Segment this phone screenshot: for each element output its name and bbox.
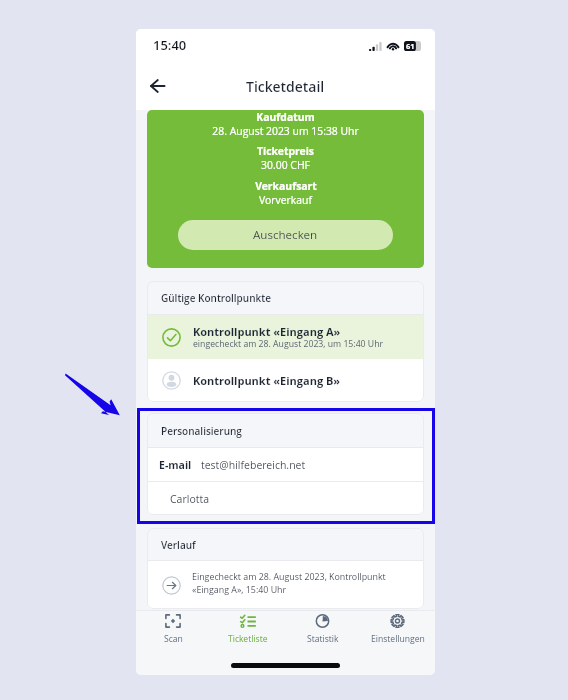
button[interactable]: Einstellungen bbox=[360, 611, 435, 645]
staticText: Auschecken bbox=[253, 227, 318, 243]
staticText: test@hilfebereich.net bbox=[201, 458, 306, 472]
staticText: Ticketliste bbox=[228, 633, 268, 645]
staticText: Scan bbox=[164, 633, 183, 645]
staticText: Verkaufsart bbox=[255, 179, 317, 193]
staticText: 28. August 2023 um 15:38 Uhr bbox=[212, 124, 359, 138]
staticText: Kontrollpunkt «Eingang A» bbox=[193, 324, 341, 339]
button[interactable]: Kontrollpunkt «Eingang B» bbox=[147, 359, 424, 402]
button[interactable]: Scan bbox=[136, 611, 210, 645]
button[interactable]: Back bbox=[140, 70, 174, 104]
staticText: Eingecheckt am 28. August 2023, Kontroll… bbox=[192, 571, 386, 596]
staticText: eingecheckt am 28. August 2023, um 15:40… bbox=[193, 338, 384, 350]
button[interactable]: Statistik bbox=[285, 611, 360, 645]
button[interactable]: Kontrollpunkt «Eingang A» bbox=[147, 315, 424, 359]
staticText: Statistik bbox=[307, 633, 339, 645]
staticText: Kaufdatum bbox=[256, 110, 315, 124]
staticText: Kontrollpunkt «Eingang B» bbox=[193, 373, 341, 388]
staticText: Einstellungen bbox=[371, 633, 425, 645]
staticText: Carlotta bbox=[170, 492, 210, 506]
button[interactable]: Auschecken bbox=[178, 220, 393, 250]
button[interactable]: E-mail bbox=[147, 448, 424, 481]
button[interactable]: Carlotta bbox=[147, 482, 424, 515]
button[interactable]: Eingecheckt am 28. August 2023, Kontroll… bbox=[147, 561, 424, 609]
staticText: Verlauf bbox=[161, 538, 196, 552]
staticText: Personalisierung bbox=[161, 424, 242, 438]
button[interactable]: Ticketliste bbox=[210, 611, 285, 645]
staticText: 15:40 bbox=[153, 36, 187, 54]
staticText: 30.00 CHF bbox=[261, 158, 310, 172]
staticText: E-mail bbox=[159, 458, 192, 472]
staticText: Vorverkauf bbox=[259, 193, 312, 207]
staticText: Ticketpreis bbox=[257, 144, 314, 158]
staticText: Gültige Kontrollpunkte bbox=[161, 291, 271, 305]
staticText: 61 bbox=[406, 41, 415, 51]
staticText: Ticketdetail bbox=[246, 77, 325, 96]
